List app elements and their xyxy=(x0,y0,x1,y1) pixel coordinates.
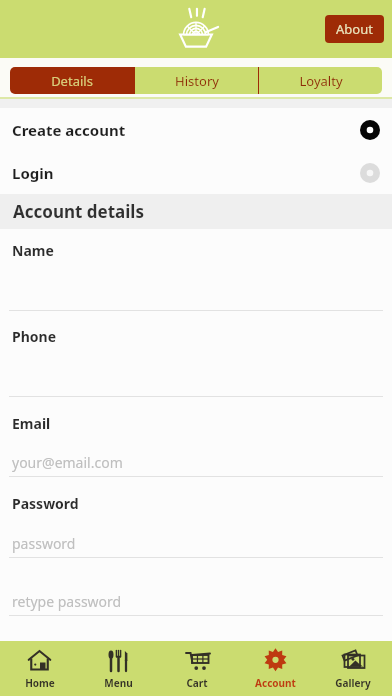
staticText: Home xyxy=(25,676,55,690)
staticText: Phone xyxy=(12,327,57,346)
staticText: About xyxy=(336,20,373,38)
staticText: Name xyxy=(12,241,54,260)
staticText: Create account xyxy=(12,120,126,140)
staticText: Login xyxy=(12,163,54,183)
staticText: Email xyxy=(12,414,51,433)
staticText: Loyalty xyxy=(299,72,343,90)
button[interactable]: Gallery xyxy=(314,641,392,696)
staticText: Account details xyxy=(13,200,144,223)
button[interactable]: About xyxy=(325,15,384,43)
staticText: Password xyxy=(12,494,79,513)
button[interactable]: Create account xyxy=(0,108,392,151)
button[interactable]: Home xyxy=(0,641,79,696)
button[interactable]: History xyxy=(135,67,258,94)
staticText: Cart xyxy=(186,676,208,690)
button[interactable]: Details xyxy=(10,67,134,94)
button[interactable]: password xyxy=(0,534,392,553)
staticText: History xyxy=(175,72,219,90)
button[interactable]: retype password xyxy=(0,592,392,611)
staticText: Account xyxy=(255,676,296,690)
button[interactable]: Loyalty xyxy=(259,67,382,94)
staticText: Gallery xyxy=(335,676,371,690)
button[interactable]: Cart xyxy=(158,641,236,696)
button[interactable]: Account xyxy=(236,641,314,696)
staticText: Details xyxy=(51,72,93,90)
button[interactable]: Menu xyxy=(79,641,158,696)
button[interactable]: your@email.com xyxy=(0,453,392,472)
staticText: Menu xyxy=(104,676,133,690)
button[interactable]: Login xyxy=(0,151,392,194)
